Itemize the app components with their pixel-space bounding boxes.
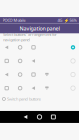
- button[interactable]: [0, 68, 79, 81]
- button[interactable]: [0, 54, 79, 68]
- button[interactable]: [0, 40, 79, 54]
- staticText: Navigation panel: [19, 25, 59, 32]
- staticText: Select buttons' arrangement for navigati…: [3, 32, 57, 42]
- button[interactable]: [0, 81, 79, 95]
- staticText: Switch panel buttons: [7, 96, 41, 102]
- staticText: POCO Mobile: [2, 18, 25, 23]
- staticText: 4G ⚡ 56%: [57, 18, 76, 23]
